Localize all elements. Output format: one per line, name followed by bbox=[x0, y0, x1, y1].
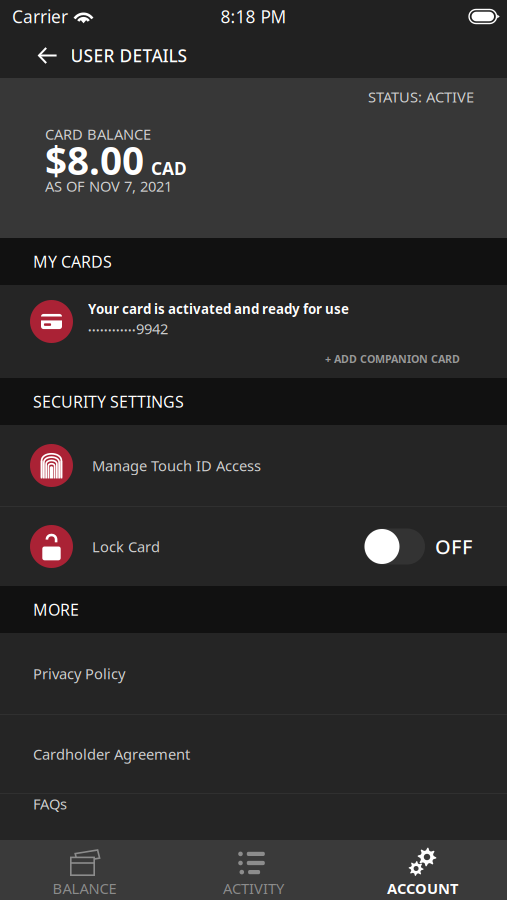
button[interactable]: Your card is activated and ready for use bbox=[0, 285, 507, 378]
button[interactable]: BALANCE bbox=[0, 840, 169, 900]
staticText: CAD bbox=[151, 157, 187, 180]
button[interactable]: ACCOUNT bbox=[338, 840, 507, 900]
staticText: + ADD COMPANION CARD bbox=[325, 352, 460, 366]
button[interactable]: Back bbox=[24, 33, 70, 77]
staticText: AS OF NOV 7, 2021 bbox=[45, 176, 172, 196]
staticText: Manage Touch ID Access bbox=[92, 456, 261, 475]
staticText: Cardholder Agreement bbox=[33, 744, 190, 764]
staticText: FAQs bbox=[33, 794, 67, 813]
staticText: $8.00 bbox=[45, 134, 144, 186]
staticText: Privacy Policy bbox=[33, 664, 125, 683]
staticText: Carrier bbox=[12, 5, 68, 28]
staticText: BALANCE bbox=[52, 878, 116, 898]
staticText: MY CARDS bbox=[33, 251, 112, 272]
staticText: USER DETAILS bbox=[70, 44, 187, 67]
staticText: SECURITY SETTINGS bbox=[33, 391, 184, 412]
staticText: ACCOUNT bbox=[387, 878, 458, 898]
staticText: •••••••••••• bbox=[88, 324, 136, 336]
button[interactable]: Manage Touch ID Access bbox=[0, 425, 507, 506]
staticText: Lock Card bbox=[92, 537, 160, 556]
button[interactable]: Cardholder Agreement bbox=[0, 715, 507, 793]
staticText: OFF bbox=[435, 533, 473, 560]
staticText: ACTIVITY bbox=[223, 878, 284, 898]
staticText: STATUS: ACTIVE bbox=[368, 87, 474, 106]
button[interactable]: FAQs bbox=[0, 794, 507, 840]
staticText: MORE bbox=[33, 599, 79, 620]
button[interactable]: Privacy Policy bbox=[0, 633, 507, 714]
button[interactable]: ACTIVITY bbox=[169, 840, 338, 900]
staticText: Your card is activated and ready for use bbox=[88, 300, 349, 318]
staticText: 9942 bbox=[136, 319, 168, 338]
staticText: CARD BALANCE bbox=[45, 124, 151, 144]
button[interactable]: Lock Card bbox=[0, 507, 507, 586]
staticText: 8:18 PM bbox=[220, 5, 286, 28]
